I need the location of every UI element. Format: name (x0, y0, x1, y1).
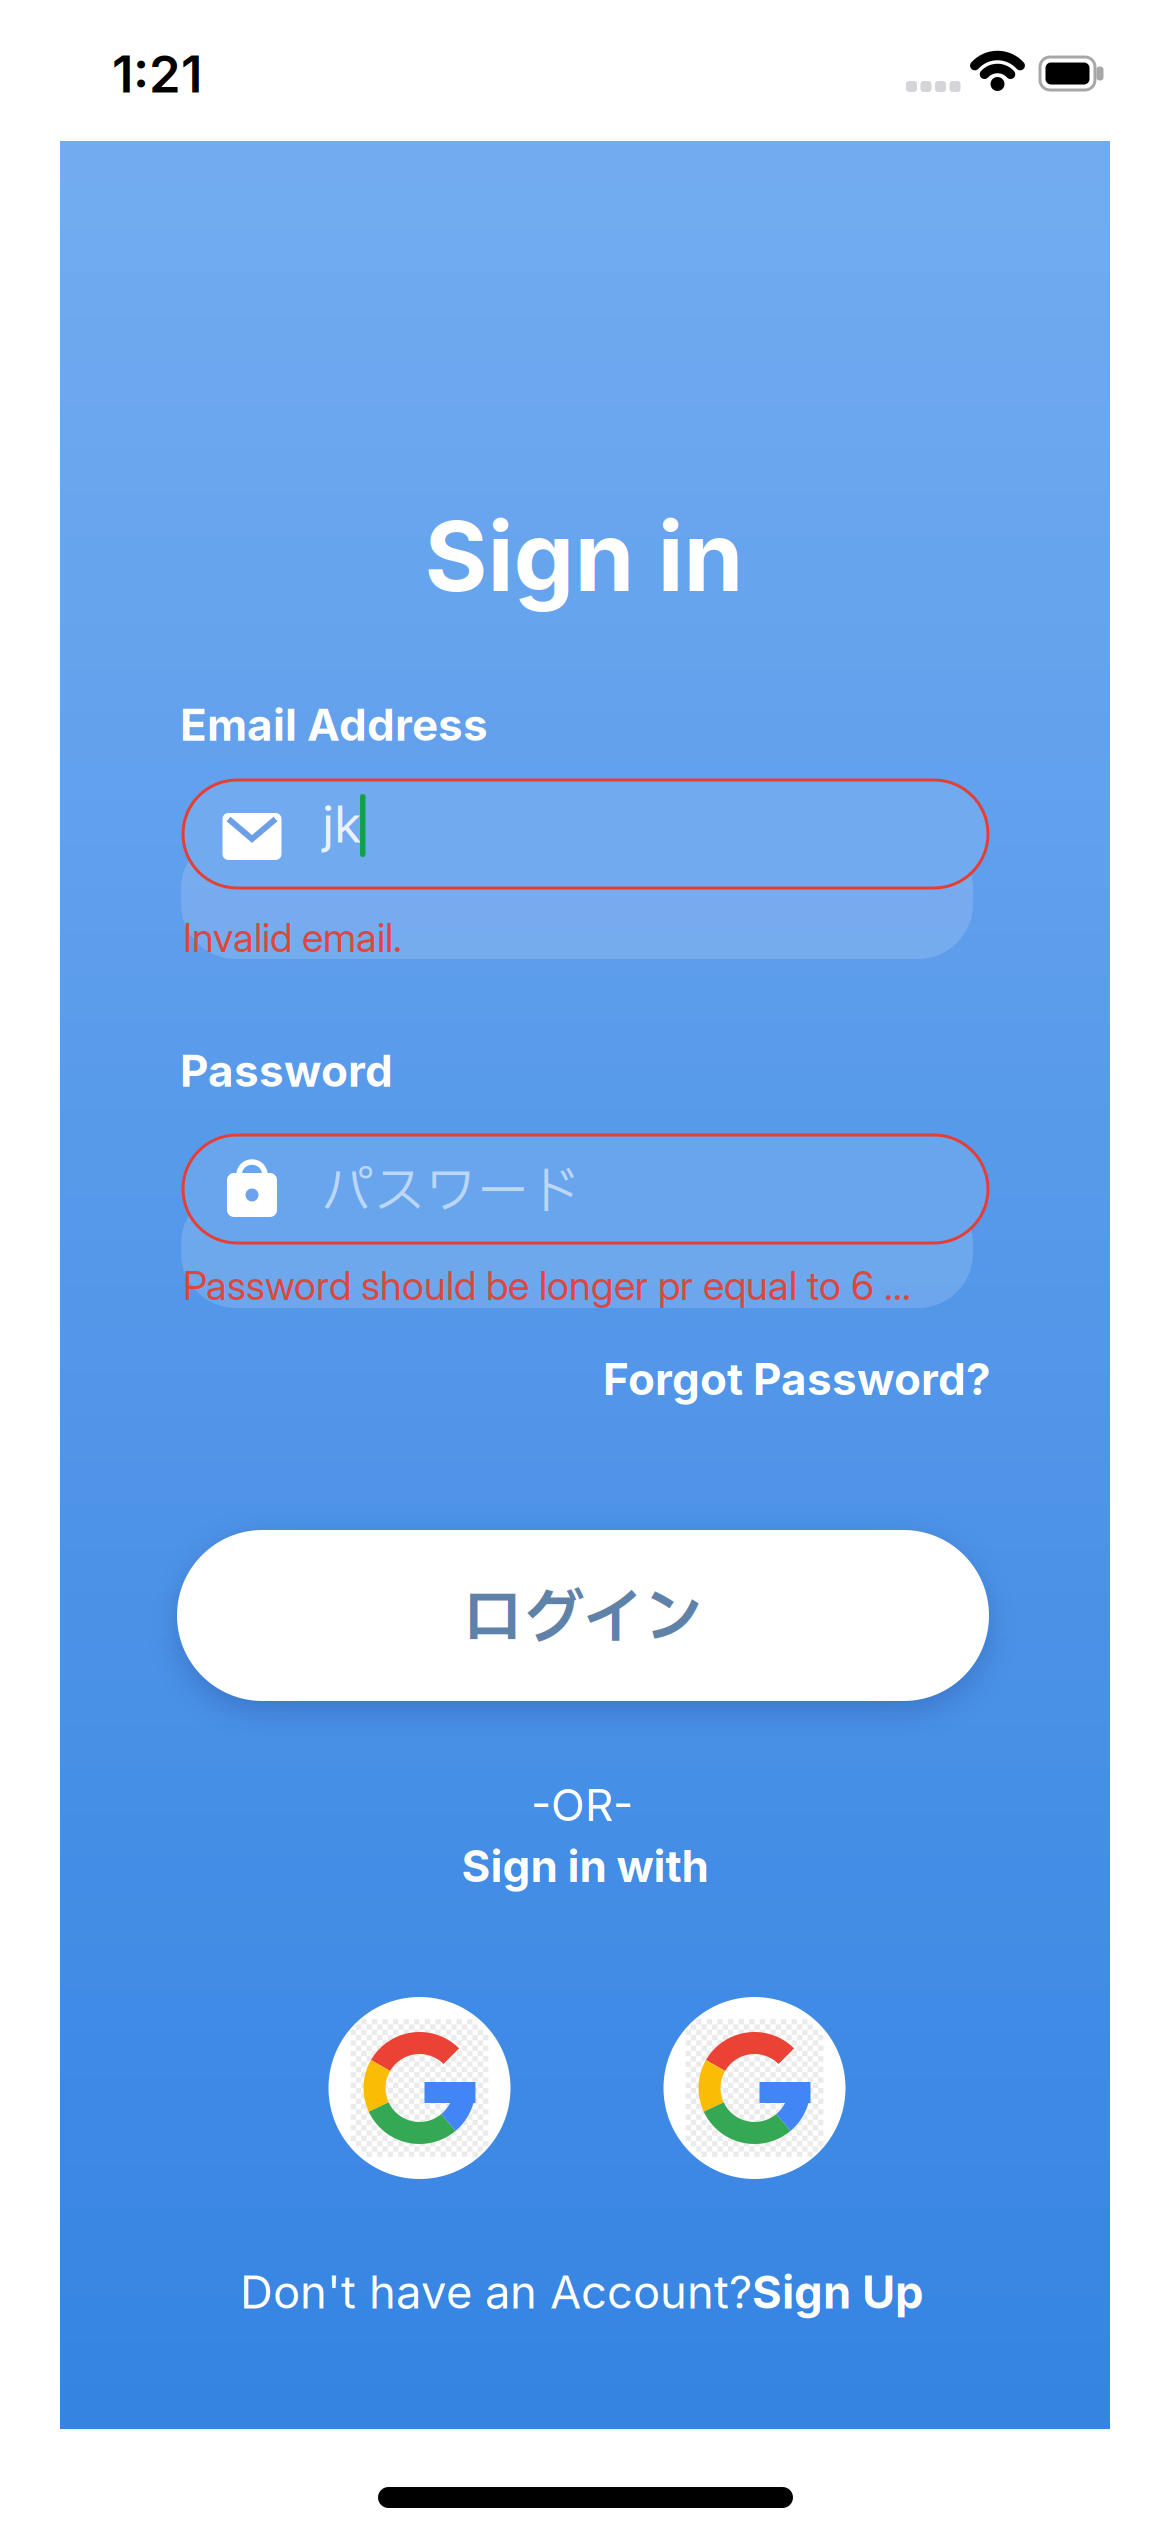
staticText: jk (322, 794, 361, 854)
staticText: Email Address (180, 698, 488, 751)
button[interactable]: ログイン (177, 1530, 989, 1701)
button[interactable]: Forgot Password? (603, 1352, 991, 1406)
staticText: Sign in with (461, 1839, 708, 1893)
staticText: ログイン (462, 1573, 704, 1665)
button[interactable]: Email Address (183, 780, 988, 888)
staticText: Invalid email. (183, 914, 402, 962)
button[interactable]: Password (183, 1135, 988, 1243)
staticText: Sign in (424, 498, 743, 614)
staticText: パスワード (321, 1154, 581, 1232)
staticText: -OR- (531, 1778, 633, 1832)
staticText: Sign Up (752, 2265, 924, 2319)
staticText: 1:21 (112, 43, 202, 105)
staticText: Password (180, 1044, 393, 1097)
button[interactable]: Don't have an Account? (240, 2265, 924, 2319)
button[interactable]: Sign in with Google (0, 0, 1170, 2532)
staticText: Don't have an Account? (240, 2265, 752, 2319)
button[interactable]: Sign in with Google (0, 0, 1170, 2532)
staticText: Password should be longer pr equal to 6 … (183, 1262, 911, 1310)
staticText: Forgot Password? (603, 1352, 991, 1406)
